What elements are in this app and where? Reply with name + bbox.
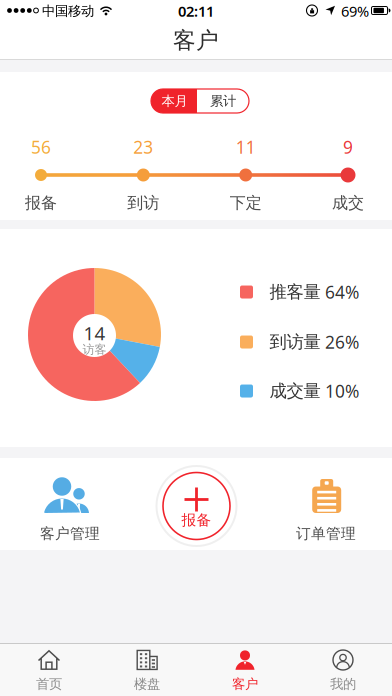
button[interactable]: 累计 bbox=[197, 89, 249, 113]
button[interactable]: 客户管理 bbox=[0, 447, 140, 550]
staticText: 成交 bbox=[332, 193, 364, 213]
button[interactable]: 楼盘 bbox=[98, 644, 196, 696]
staticText: 下定 bbox=[230, 193, 262, 213]
staticText: 成交量 bbox=[269, 380, 320, 402]
staticText: 报备 bbox=[25, 193, 57, 213]
staticText: 本月 bbox=[161, 93, 187, 109]
button[interactable]: 订单管理 bbox=[256, 447, 392, 550]
staticText: 到访 bbox=[127, 193, 159, 213]
staticText: 中国移动 bbox=[42, 3, 94, 19]
staticText: 推客量 bbox=[269, 281, 320, 303]
button[interactable]: 报备 bbox=[148, 458, 244, 554]
button[interactable]: 客户 bbox=[196, 644, 294, 696]
staticText: 69% bbox=[341, 1, 369, 21]
staticText: 14 bbox=[83, 321, 105, 345]
staticText: 64% bbox=[325, 280, 359, 303]
staticText: 首页 bbox=[36, 676, 62, 692]
staticText: 26% bbox=[325, 330, 359, 353]
staticText: 到访量 bbox=[269, 331, 320, 353]
staticText: 10% bbox=[325, 379, 359, 402]
staticText: 客户管理 bbox=[40, 524, 100, 542]
staticText: 23 bbox=[133, 135, 153, 158]
staticText: 订单管理 bbox=[296, 524, 356, 542]
staticText: 9 bbox=[343, 135, 353, 158]
staticText: 11 bbox=[236, 135, 256, 158]
staticText: 客户 bbox=[173, 27, 219, 54]
button[interactable]: 首页 bbox=[0, 644, 98, 696]
button[interactable]: 本月 bbox=[151, 89, 197, 113]
staticText: 56 bbox=[31, 135, 51, 158]
staticText: 楼盘 bbox=[134, 676, 160, 692]
staticText: 02:11 bbox=[178, 1, 214, 21]
staticText: 客户 bbox=[232, 676, 258, 692]
button[interactable]: 我的 bbox=[294, 644, 392, 696]
staticText: 访客 bbox=[82, 342, 106, 357]
staticText: 报备 bbox=[181, 511, 211, 529]
staticText: 我的 bbox=[330, 676, 356, 692]
staticText: 累计 bbox=[210, 93, 236, 109]
